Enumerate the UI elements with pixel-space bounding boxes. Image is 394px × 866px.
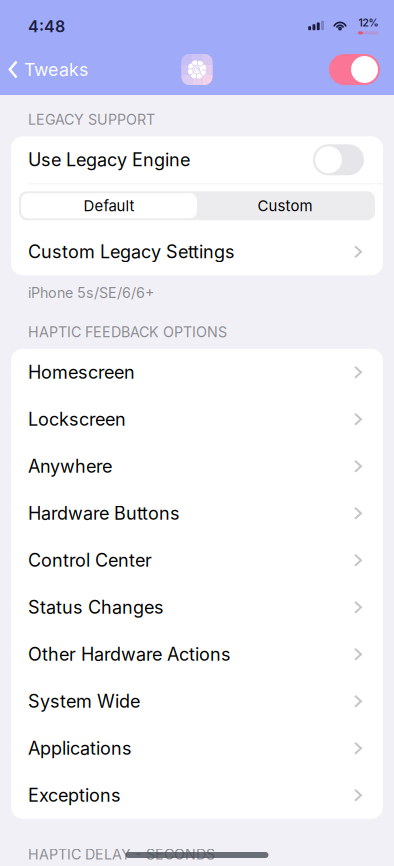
staticText: Lockscreen <box>28 408 126 430</box>
button[interactable]: Sileo <box>181 54 212 85</box>
staticText: Hardware Buttons <box>28 502 180 524</box>
button[interactable]: Homescreen <box>11 349 383 396</box>
button[interactable]: Hardware Buttons <box>11 490 383 537</box>
staticText: 12% <box>358 17 378 29</box>
staticText: Use Legacy Engine <box>28 149 190 171</box>
staticText: LEGACY SUPPORT <box>28 111 155 128</box>
button[interactable]: Enable tweaks <box>329 54 394 85</box>
staticText: Custom Legacy Settings <box>28 241 235 263</box>
button[interactable]: Exceptions <box>11 772 383 819</box>
button[interactable]: Custom <box>197 193 373 218</box>
staticText: Tweaks <box>24 59 88 80</box>
button[interactable]: Tweaks <box>0 49 88 90</box>
staticText: Default <box>83 197 134 215</box>
staticText: Applications <box>28 737 132 759</box>
button[interactable]: Anywhere <box>11 443 383 490</box>
staticText: Other Hardware Actions <box>28 643 231 665</box>
staticText: Custom <box>257 197 312 215</box>
staticText: Control Center <box>28 549 152 571</box>
staticText: Homescreen <box>28 361 135 383</box>
button[interactable]: Default <box>21 193 197 218</box>
staticText: Exceptions <box>28 784 121 806</box>
staticText: System Wide <box>28 690 140 712</box>
staticText: HAPTIC DELAY - SECONDS <box>28 846 215 863</box>
button[interactable]: Custom Legacy Settings <box>11 228 383 275</box>
button[interactable]: Control Center <box>11 537 383 584</box>
button[interactable]: Status Changes <box>11 584 383 631</box>
staticText: HAPTIC FEEDBACK OPTIONS <box>28 323 227 341</box>
staticText: 4:48 <box>28 17 65 36</box>
button[interactable]: System Wide <box>11 678 383 725</box>
staticText: iPhone 5s/SE/6/6+ <box>28 284 154 302</box>
button[interactable]: Other Hardware Actions <box>11 631 383 678</box>
button[interactable]: Applications <box>11 725 383 772</box>
staticText: Anywhere <box>28 455 112 477</box>
staticText: Status Changes <box>28 596 164 618</box>
button[interactable]: Lockscreen <box>11 396 383 443</box>
